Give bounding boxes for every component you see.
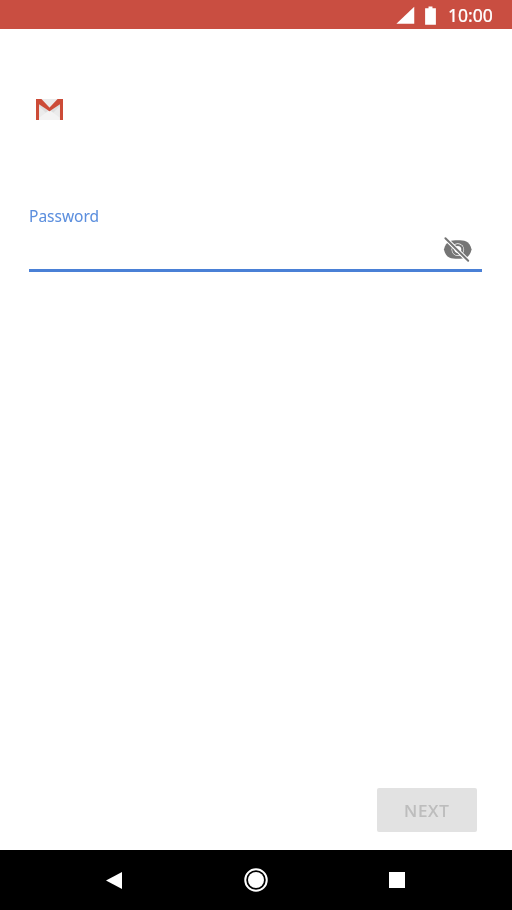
button[interactable]: Password <box>29 200 482 272</box>
staticText: 10:00 <box>448 3 493 27</box>
staticText: NEXT <box>404 799 450 822</box>
staticText: Password <box>29 205 100 226</box>
button[interactable]: Show password <box>434 228 478 272</box>
button[interactable]: Home <box>234 858 278 902</box>
button[interactable]: Back <box>92 858 136 902</box>
other: Gmail <box>36 99 63 120</box>
button[interactable]: Recent apps <box>375 858 419 902</box>
button[interactable]: NEXT <box>377 788 477 832</box>
